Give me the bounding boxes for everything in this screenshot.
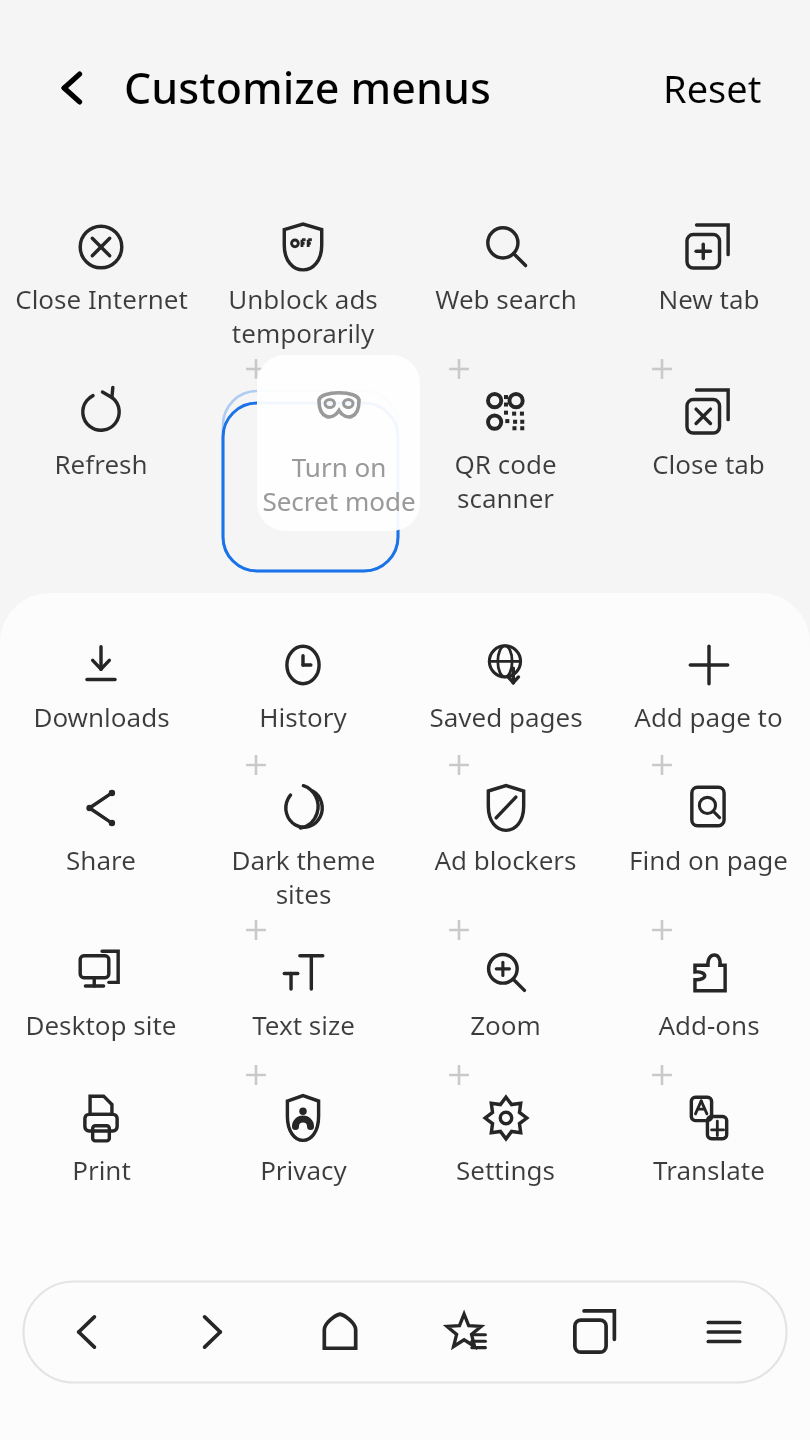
button[interactable]: Home xyxy=(276,1280,404,1384)
button[interactable]: Saved pages xyxy=(404,635,607,734)
button[interactable]: Desktop site xyxy=(0,943,202,1042)
button[interactable]: Refresh xyxy=(0,382,202,481)
button[interactable]: Find on page xyxy=(607,778,810,877)
button[interactable]: Web search xyxy=(404,217,607,316)
button[interactable]: Menu xyxy=(660,1280,788,1384)
staticText: Zoom xyxy=(470,1007,541,1042)
staticText: Share xyxy=(66,842,136,877)
button[interactable]: Print xyxy=(0,1088,202,1187)
button[interactable]: QR code scanner xyxy=(404,382,607,515)
button[interactable]: New tab xyxy=(607,217,810,316)
button[interactable]: Forward xyxy=(149,1280,276,1384)
staticText: Downloads xyxy=(33,699,170,734)
staticText: Turn on Secret mode xyxy=(262,449,416,519)
button[interactable]: Back xyxy=(22,1280,149,1384)
button[interactable]: Settings xyxy=(404,1088,607,1187)
staticText: Unblock ads temporarily xyxy=(228,281,378,350)
staticText: Web search xyxy=(435,281,577,316)
staticText: Privacy xyxy=(260,1152,347,1187)
staticText: Customize menus xyxy=(124,58,491,117)
staticText: Saved pages xyxy=(429,699,583,734)
staticText: Reset xyxy=(663,62,762,114)
button[interactable]: Tabs xyxy=(532,1280,660,1384)
staticText: Translate xyxy=(653,1152,765,1187)
button[interactable]: Share xyxy=(0,778,202,877)
staticText: History xyxy=(259,699,347,734)
staticText: Close Internet xyxy=(15,281,188,316)
button[interactable]: Text size xyxy=(202,943,404,1042)
button[interactable]: Back xyxy=(34,53,104,123)
staticText: Close tab xyxy=(652,446,765,481)
button[interactable]: Ad blockers xyxy=(404,778,607,877)
button[interactable]: Close tab xyxy=(607,382,810,481)
button[interactable]: History xyxy=(202,635,404,734)
staticText: Dark theme sites xyxy=(231,842,376,911)
staticText: Add-ons xyxy=(658,1007,760,1042)
staticText: Add page to xyxy=(634,699,783,734)
button[interactable]: Unblock ads temporarily xyxy=(202,217,404,350)
button[interactable]: Close Internet xyxy=(0,217,202,316)
button[interactable]: Privacy xyxy=(202,1088,404,1187)
button[interactable]: Reset xyxy=(657,56,768,120)
button[interactable]: Dark theme sites xyxy=(202,778,404,911)
staticText: QR code scanner xyxy=(454,446,557,515)
button[interactable]: Zoom xyxy=(404,943,607,1042)
button[interactable]: Add-ons xyxy=(607,943,810,1042)
button[interactable]: Downloads xyxy=(0,635,202,734)
staticText: Desktop site xyxy=(25,1007,177,1042)
staticText: Refresh xyxy=(54,446,148,481)
button[interactable]: Bookmarks xyxy=(404,1280,532,1384)
staticText: Settings xyxy=(456,1152,555,1187)
button[interactable]: Add page to xyxy=(607,635,810,734)
button[interactable]: Translate xyxy=(607,1088,810,1187)
staticText: Ad blockers xyxy=(434,842,577,877)
staticText: Print xyxy=(72,1152,131,1187)
staticText: Find on page xyxy=(629,842,788,877)
button[interactable]: Turn on Secret mode xyxy=(257,355,420,531)
staticText: New tab xyxy=(658,281,760,316)
staticText: Text size xyxy=(252,1007,355,1042)
